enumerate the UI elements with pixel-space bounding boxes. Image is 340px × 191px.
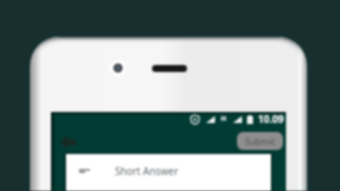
button[interactable]: Short Answer — [66, 154, 271, 191]
button[interactable]: Back — [56, 130, 80, 154]
staticText: H — [221, 114, 227, 124]
button[interactable]: Submit — [237, 132, 283, 150]
staticText: 10.09 — [258, 112, 284, 126]
staticText: Submit — [245, 135, 276, 147]
staticText: Short Answer — [115, 164, 179, 178]
